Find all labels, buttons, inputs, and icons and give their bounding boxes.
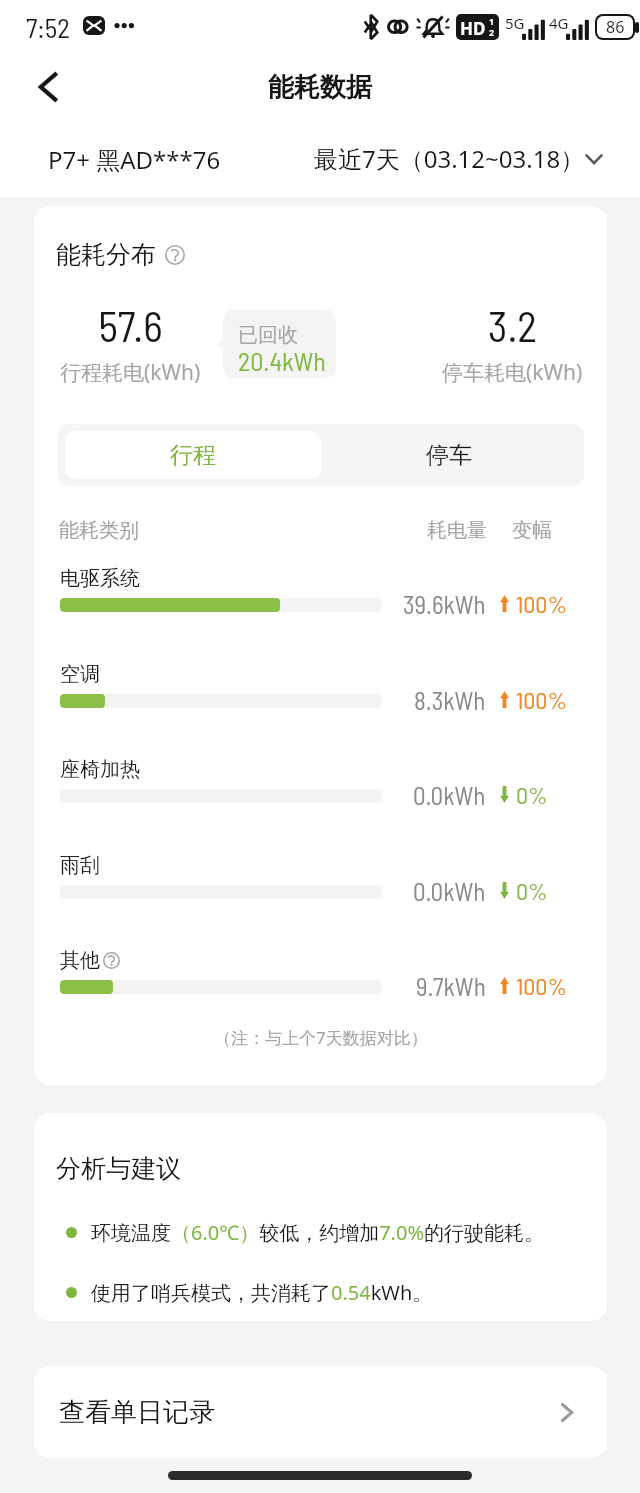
- staticText: 其他: [60, 948, 100, 973]
- staticText: 0.0kWh: [413, 876, 486, 906]
- staticText: 环境温度（6.0℃）较低，约增加7.0%的行驶能耗。: [91, 1219, 544, 1246]
- button[interactable]: Back: [20, 59, 76, 115]
- staticText: 能耗数据: [268, 71, 372, 104]
- staticText: 已回收: [238, 323, 298, 348]
- staticText: 9.7kWh: [416, 971, 486, 1001]
- staticText: 8.3kWh: [414, 685, 486, 715]
- staticText: 100%: [516, 971, 568, 1000]
- button[interactable]: 查看单日记录: [34, 1366, 607, 1458]
- staticText: P7+ 黑AD***76: [48, 143, 221, 176]
- staticText: 5G: [505, 13, 525, 33]
- staticText: 1: [489, 15, 495, 27]
- staticText: 20.4kWh: [238, 345, 326, 376]
- staticText: 100%: [516, 685, 568, 714]
- staticText: 行程耗电(kWh): [60, 358, 201, 386]
- staticText: HD: [460, 17, 486, 40]
- button[interactable]: 最近7天（03.12~03.18）: [314, 142, 603, 175]
- staticText: （注：与上个7天数据对比）: [214, 1026, 428, 1049]
- staticText: 停车耗电(kWh): [442, 358, 583, 386]
- staticText: 最近7天（03.12~03.18）: [314, 142, 585, 175]
- staticText: 4G: [549, 13, 569, 33]
- staticText: 57.6: [98, 300, 163, 344]
- staticText: 100%: [516, 589, 568, 618]
- staticText: 分析与建议: [56, 1153, 181, 1184]
- staticText: 39.6kWh: [403, 589, 486, 619]
- staticText: 3.2: [488, 300, 537, 344]
- staticText: 耗电量: [427, 518, 487, 543]
- staticText: 变幅: [512, 518, 552, 543]
- staticText: 86: [606, 16, 625, 38]
- staticText: 0.0kWh: [413, 780, 486, 810]
- button[interactable]: 停车: [321, 431, 577, 479]
- staticText: 查看单日记录: [59, 1396, 215, 1429]
- staticText: 雨刮: [60, 853, 100, 878]
- staticText: 0%: [516, 780, 548, 809]
- staticText: 能耗分布: [56, 239, 156, 270]
- button[interactable]: 行程: [65, 431, 321, 479]
- staticText: 空调: [60, 662, 100, 687]
- staticText: 能耗类别: [59, 518, 139, 543]
- staticText: 停车: [426, 441, 472, 470]
- staticText: 行程: [170, 441, 216, 470]
- staticText: 电驱系统: [60, 566, 140, 591]
- staticText: 座椅加热: [60, 757, 140, 782]
- staticText: 使用了哨兵模式，共消耗了0.54kWh。: [91, 1279, 433, 1306]
- staticText: 7:52: [26, 11, 70, 39]
- staticText: 0%: [516, 876, 548, 905]
- staticText: 2: [489, 26, 495, 38]
